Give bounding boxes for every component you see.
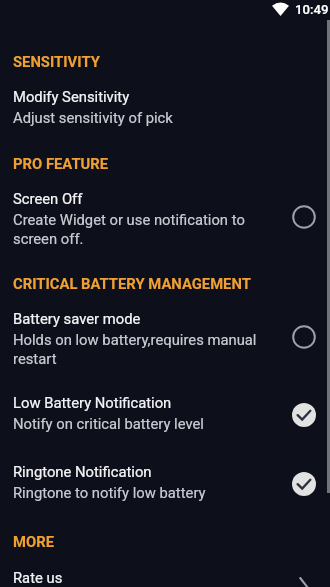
button[interactable]: Modify Sensitivity [0,88,330,126]
staticText: Battery saver mode [13,310,141,327]
other: Wi-Fi [272,3,289,16]
staticText: Modify Sensitivity [13,88,130,105]
staticText: Rate us [13,569,285,586]
staticText: MORE [13,533,54,550]
staticText: Holds on low battery,requires manual res… [13,331,257,368]
staticText: Screen Off [13,190,83,207]
staticText: Notify on critical battery level [13,415,204,432]
button[interactable]: Rate us [285,568,323,587]
staticText: CRITICAL BATTERY MANAGEMENT [13,275,251,292]
button[interactable]: Low Battery Notification [0,394,330,432]
button[interactable]: Disabled [285,198,323,236]
button[interactable]: Enabled [285,465,323,503]
staticText: PRO FEATURE [13,155,109,172]
button[interactable]: Disabled [285,318,323,356]
button[interactable]: Enabled [285,396,323,434]
staticText: Ringtone to notify low battery [13,484,206,501]
button[interactable]: Ringtone Notification [0,463,330,501]
button[interactable]: Battery saver mode [0,310,330,368]
button[interactable]: Screen Off [0,190,330,248]
staticText: Create Widget or use notification to scr… [13,211,245,248]
button[interactable]: Rate us [0,568,330,587]
staticText: Ringtone Notification [13,463,152,480]
staticText: SENSITIVITY [13,53,100,70]
staticText: 10:49 [295,2,329,17]
staticText: Low Battery Notification [13,394,172,411]
staticText: Adjust sensitivity of pick [13,109,173,126]
